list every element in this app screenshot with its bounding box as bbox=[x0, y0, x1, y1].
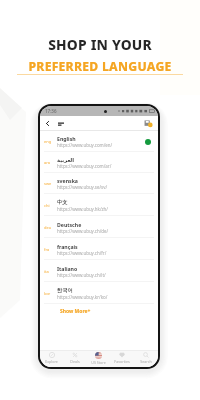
button[interactable]: kor bbox=[40, 282, 158, 304]
staticText: fra bbox=[44, 247, 57, 252]
staticText: SHOP IN YOUR bbox=[48, 35, 152, 54]
button[interactable]: ara bbox=[40, 152, 158, 173]
staticText: Favorites bbox=[114, 359, 130, 364]
staticText: 17:36 bbox=[45, 108, 57, 114]
staticText: https://www.ubuy.ch/de/ bbox=[57, 228, 109, 234]
button[interactable]: Explore bbox=[40, 351, 63, 364]
staticText: Italiano bbox=[57, 265, 78, 272]
staticText: Deals bbox=[70, 359, 80, 364]
staticText: https://www.ubuy.com/ar/ bbox=[57, 163, 112, 169]
staticText: https://www.ubuy.se/sv/ bbox=[57, 184, 108, 190]
staticText: العربية bbox=[57, 157, 75, 163]
staticText: Search bbox=[140, 359, 152, 364]
button[interactable]: deu bbox=[40, 216, 158, 238]
staticText: ara bbox=[44, 160, 57, 165]
staticText: https://www.ubuy.com/en/ bbox=[57, 142, 113, 148]
button[interactable]: Favorites bbox=[110, 351, 134, 364]
button[interactable]: Show More+ bbox=[60, 308, 91, 315]
button[interactable]: ita bbox=[40, 260, 158, 282]
button[interactable]: Search bbox=[134, 351, 158, 364]
staticText: swe bbox=[44, 181, 57, 186]
staticText: English bbox=[57, 135, 76, 142]
staticText: 中文 bbox=[57, 199, 68, 206]
button[interactable]: swe bbox=[40, 173, 158, 194]
staticText: 한국어 bbox=[57, 287, 73, 294]
staticText: svenska bbox=[57, 177, 78, 184]
staticText: français bbox=[57, 243, 78, 250]
button[interactable]: US Store bbox=[86, 351, 110, 364]
staticText: Deutsche bbox=[57, 221, 82, 228]
button[interactable]: Cart bbox=[142, 117, 154, 129]
staticText: https://www.ubuy.ch/it/ bbox=[57, 272, 106, 278]
staticText: eng bbox=[44, 139, 57, 144]
button[interactable]: Deals bbox=[63, 351, 86, 364]
button[interactable]: Back bbox=[42, 118, 53, 129]
button[interactable]: eng bbox=[40, 131, 158, 152]
button[interactable]: chi bbox=[40, 194, 158, 216]
staticText: ita bbox=[44, 269, 57, 274]
button[interactable]: Filter bbox=[55, 118, 66, 129]
staticText: https://www.ubuy.hk/zh/ bbox=[57, 206, 108, 212]
staticText: PREFERRED LANGUAGE bbox=[28, 58, 172, 75]
staticText: kor bbox=[44, 291, 57, 296]
staticText: Explore bbox=[45, 359, 58, 364]
staticText: deu bbox=[44, 225, 57, 230]
staticText: https://www.ubuy.kr/ko/ bbox=[57, 294, 108, 300]
staticText: US Store bbox=[91, 360, 106, 364]
button[interactable]: fra bbox=[40, 238, 158, 260]
staticText: https://www.ubuy.ch/fr/ bbox=[57, 250, 107, 256]
staticText: chi bbox=[44, 203, 57, 208]
